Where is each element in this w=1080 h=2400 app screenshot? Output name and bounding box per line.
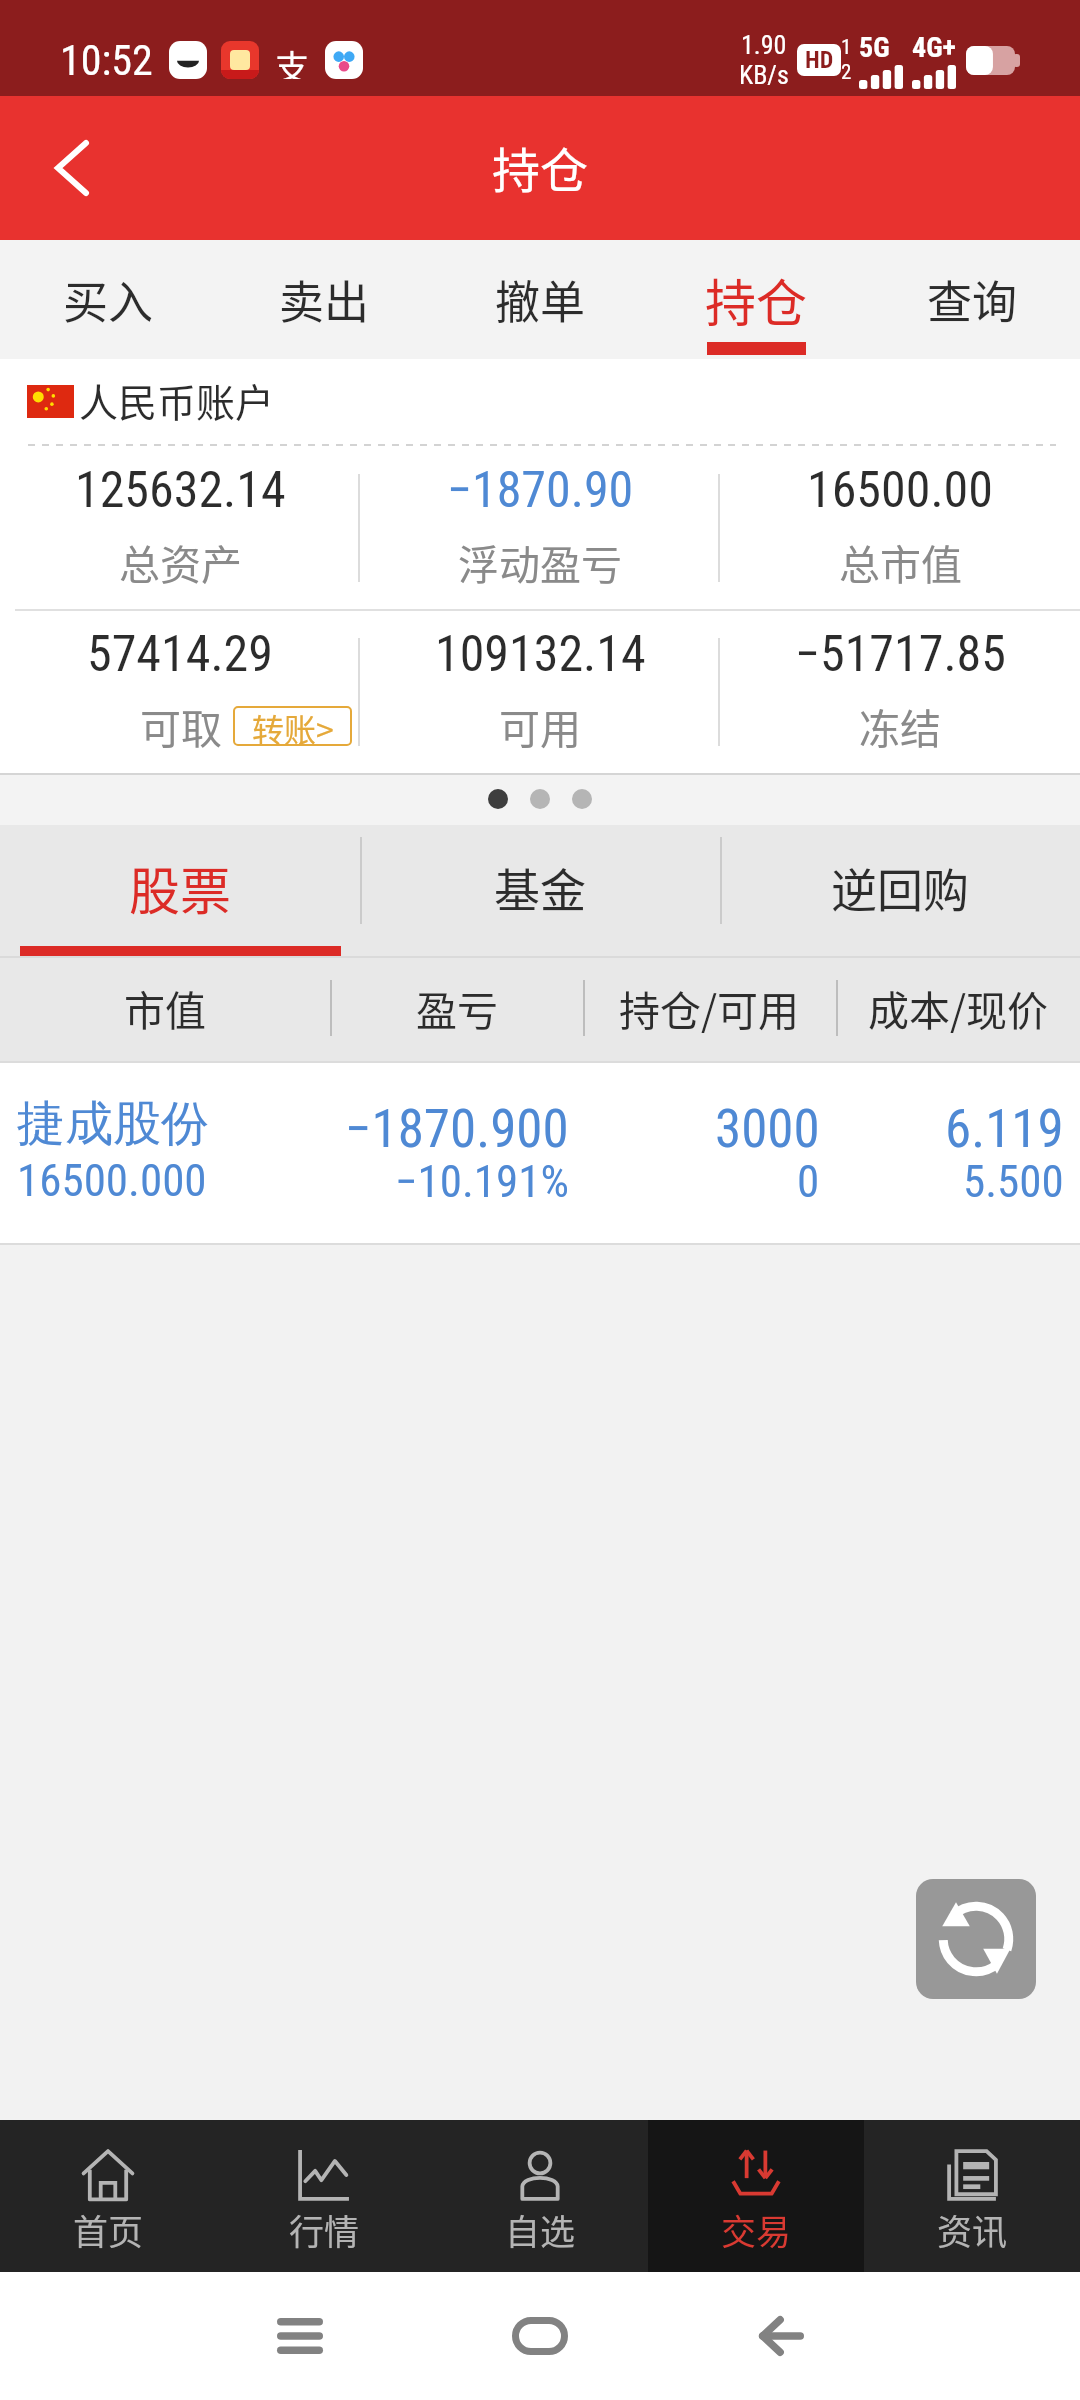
staticText: 5G [859, 31, 890, 64]
staticText: 首页 [73, 2204, 144, 2255]
staticText: 4G+ [912, 31, 956, 64]
button[interactable]: 首页 [0, 2120, 216, 2272]
staticText: −10.191% [395, 1155, 569, 1208]
staticText: KB/s [739, 60, 789, 90]
staticText: −51717.85 [795, 625, 1006, 684]
staticText: 成本/现价 [868, 978, 1049, 1037]
staticText: HD [805, 46, 834, 74]
button[interactable]: 持仓 [648, 240, 864, 359]
button[interactable]: 转账> [233, 706, 352, 746]
button[interactable]: Back [26, 122, 118, 214]
staticText: −1870.90 [447, 461, 634, 520]
staticText: 捷成股份 [17, 1094, 209, 1154]
button[interactable]: 交易 [648, 2120, 864, 2272]
staticText: 浮动盈亏 [458, 532, 622, 591]
staticText: 57414.29 [87, 625, 273, 684]
staticText: 6.119 [945, 1098, 1064, 1160]
staticText: 持仓/可用 [619, 978, 800, 1037]
staticText: 冻结 [859, 696, 941, 755]
staticText: 可用 [499, 696, 581, 755]
staticText: 109132.14 [435, 625, 646, 684]
staticText: 交易 [721, 2204, 792, 2255]
staticText: 行情 [289, 2204, 360, 2255]
button[interactable]: 行情 [216, 2120, 432, 2272]
button[interactable]: 捷成股份 [0, 1063, 1080, 1245]
staticText: 查询 [927, 267, 1018, 332]
staticText: 持仓 [705, 263, 808, 337]
staticText: 撤单 [495, 267, 586, 332]
button[interactable]: 撤单 [432, 240, 648, 359]
staticText: 盈亏 [416, 978, 498, 1037]
button[interactable]: 自选 [432, 2120, 648, 2272]
button[interactable]: 资讯 [864, 2120, 1080, 2272]
staticText: 人民币账户 [79, 372, 275, 428]
staticText: 2 [841, 60, 852, 85]
staticText: 125632.14 [75, 461, 286, 520]
button[interactable]: Recent apps [257, 2293, 343, 2379]
staticText: 卖出 [279, 267, 370, 332]
button[interactable]: 买入 [0, 240, 216, 359]
button[interactable]: 查询 [864, 240, 1080, 359]
staticText: 股票 [129, 851, 232, 925]
staticText: 16500.00 [807, 461, 993, 520]
button[interactable]: 基金 [360, 825, 720, 956]
staticText: 3000 [715, 1098, 820, 1160]
staticText: 持仓 [492, 132, 589, 202]
staticText: 总市值 [839, 532, 962, 591]
staticText: 10:52 [60, 36, 153, 85]
button[interactable]: 逆回购 [720, 825, 1080, 956]
staticText: 5.500 [963, 1155, 1064, 1208]
staticText: 1.90 [741, 30, 787, 60]
staticText: 自选 [505, 2204, 576, 2255]
staticText: −1870.900 [345, 1098, 569, 1160]
button[interactable]: 股票 [0, 825, 360, 956]
staticText: 可取 [140, 696, 222, 755]
staticText: 0 [797, 1155, 820, 1208]
staticText: 资讯 [937, 2204, 1008, 2255]
staticText: 1 [841, 35, 852, 60]
staticText: 买入 [63, 267, 154, 332]
staticText: 支 [275, 41, 309, 79]
button[interactable]: Back [738, 2293, 824, 2379]
staticText: 市值 [124, 978, 206, 1037]
staticText: 转账> [252, 705, 334, 745]
button[interactable]: Home [497, 2293, 583, 2379]
staticText: 16500.000 [17, 1154, 207, 1207]
button[interactable]: 卖出 [216, 240, 432, 359]
staticText: 基金 [494, 854, 586, 921]
staticText: 逆回购 [831, 854, 969, 921]
button[interactable]: Refresh [916, 1879, 1036, 1999]
staticText: 总资产 [119, 532, 242, 591]
